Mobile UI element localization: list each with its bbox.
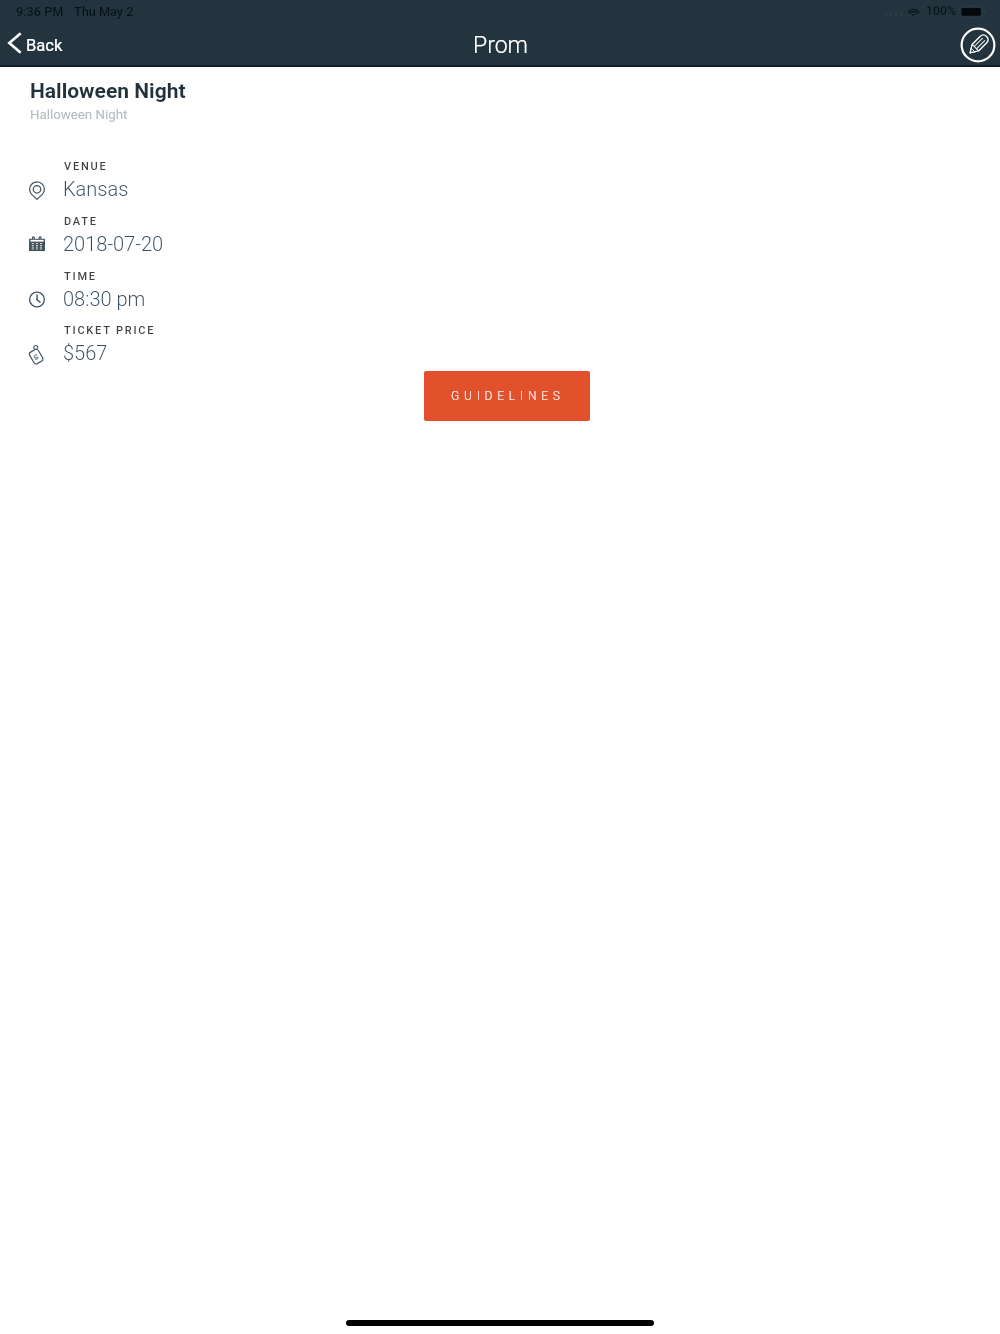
staticText: Back (26, 36, 63, 55)
staticText: 9:36 PM (16, 4, 64, 19)
staticText: Thu May 2 (74, 4, 134, 19)
staticText: Halloween Night (30, 79, 186, 104)
staticText: GUIDELINES (451, 389, 565, 403)
staticText: Prom (473, 32, 528, 59)
staticText: DATE (64, 215, 98, 228)
staticText: Kansas (63, 177, 129, 200)
button[interactable]: Edit (960, 27, 996, 63)
staticText: $567 (63, 341, 108, 364)
staticText: 100% (926, 4, 956, 18)
staticText: 08:30 pm (63, 287, 146, 310)
staticText: VENUE (64, 160, 108, 173)
staticText: TICKET PRICE (64, 324, 156, 337)
staticText: TIME (64, 270, 97, 283)
button[interactable]: GUIDELINES (424, 371, 590, 421)
staticText: 2018-07-20 (63, 232, 164, 255)
button[interactable]: Back (3, 27, 73, 65)
staticText: Halloween Night (30, 107, 128, 123)
